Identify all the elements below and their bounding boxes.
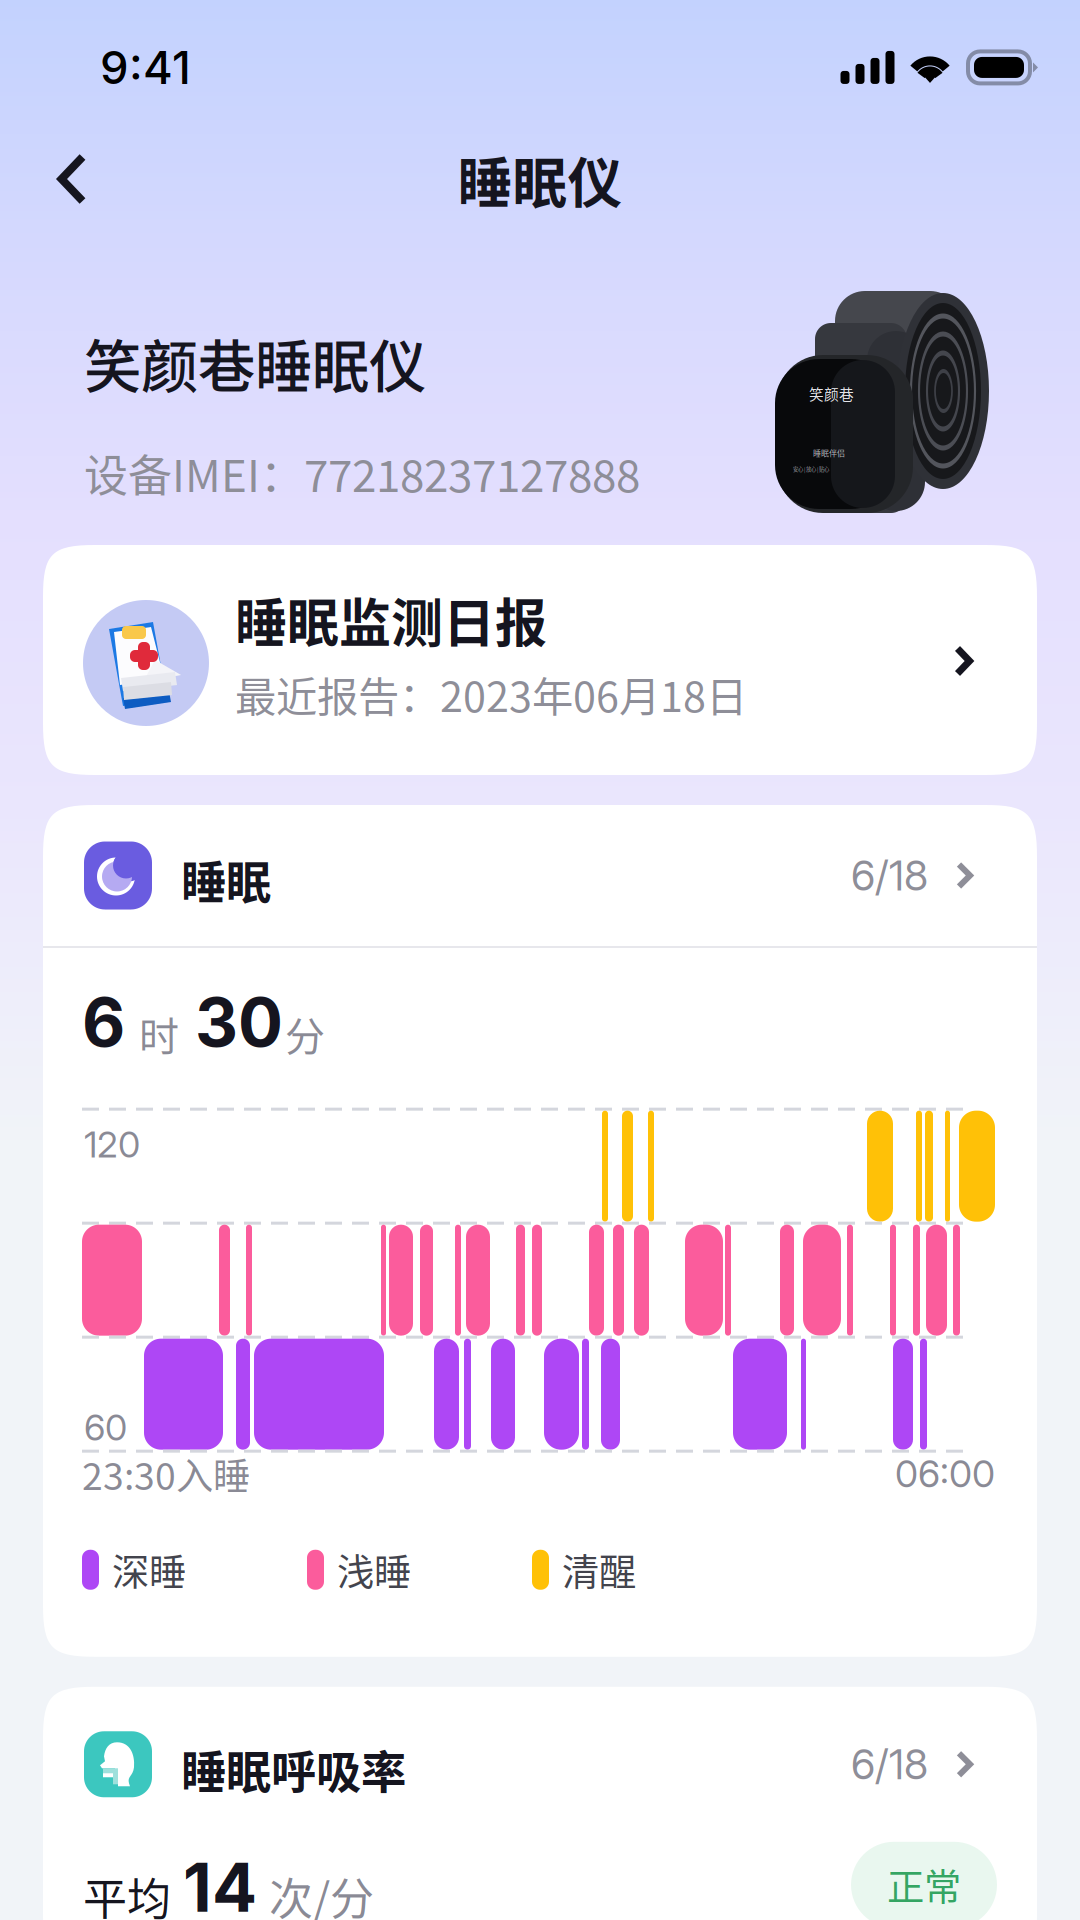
- staticText: 6/18: [851, 850, 928, 900]
- button[interactable]: 睡眠监测日报: [43, 545, 1037, 775]
- staticText: 14: [183, 1847, 257, 1920]
- staticText: 6/18: [851, 1739, 928, 1789]
- staticText: 30: [195, 982, 283, 1063]
- staticText: 23:30入睡: [82, 1447, 250, 1501]
- staticText: 9:41: [100, 40, 191, 95]
- staticText: 06:00: [895, 1451, 995, 1496]
- staticText: 次/分: [269, 1864, 374, 1920]
- staticText: 深睡: [112, 1543, 186, 1597]
- button[interactable]: Back: [21, 131, 123, 227]
- staticText: 笑颜巷: [809, 383, 854, 404]
- staticText: 睡眠监测日报: [235, 582, 547, 657]
- staticText: 平均: [83, 1864, 171, 1920]
- staticText: 正常: [887, 1858, 961, 1912]
- staticText: 笑颜巷睡眠仪: [84, 321, 426, 404]
- staticText: 清醒: [562, 1543, 636, 1597]
- staticText: 60: [84, 1406, 127, 1449]
- staticText: 浅睡: [337, 1543, 411, 1597]
- staticText: 睡眠伴侣: [813, 447, 845, 459]
- button[interactable]: 睡眠: [43, 805, 1037, 946]
- staticText: 最近报告：2023年06月18日: [235, 664, 747, 724]
- staticText: 安心 | 放心 | 贴心: [793, 465, 829, 473]
- staticText: 时: [139, 1005, 179, 1063]
- staticText: 6: [82, 982, 125, 1063]
- staticText: 睡眠呼吸率: [181, 1736, 406, 1802]
- staticText: 设备IMEI：77218237127888: [84, 441, 640, 505]
- staticText: 睡眠仪: [457, 139, 622, 219]
- staticText: 120: [84, 1123, 140, 1166]
- staticText: 分: [285, 1005, 325, 1063]
- staticText: 睡眠: [181, 847, 271, 912]
- button[interactable]: 睡眠呼吸率: [43, 1687, 1037, 1842]
